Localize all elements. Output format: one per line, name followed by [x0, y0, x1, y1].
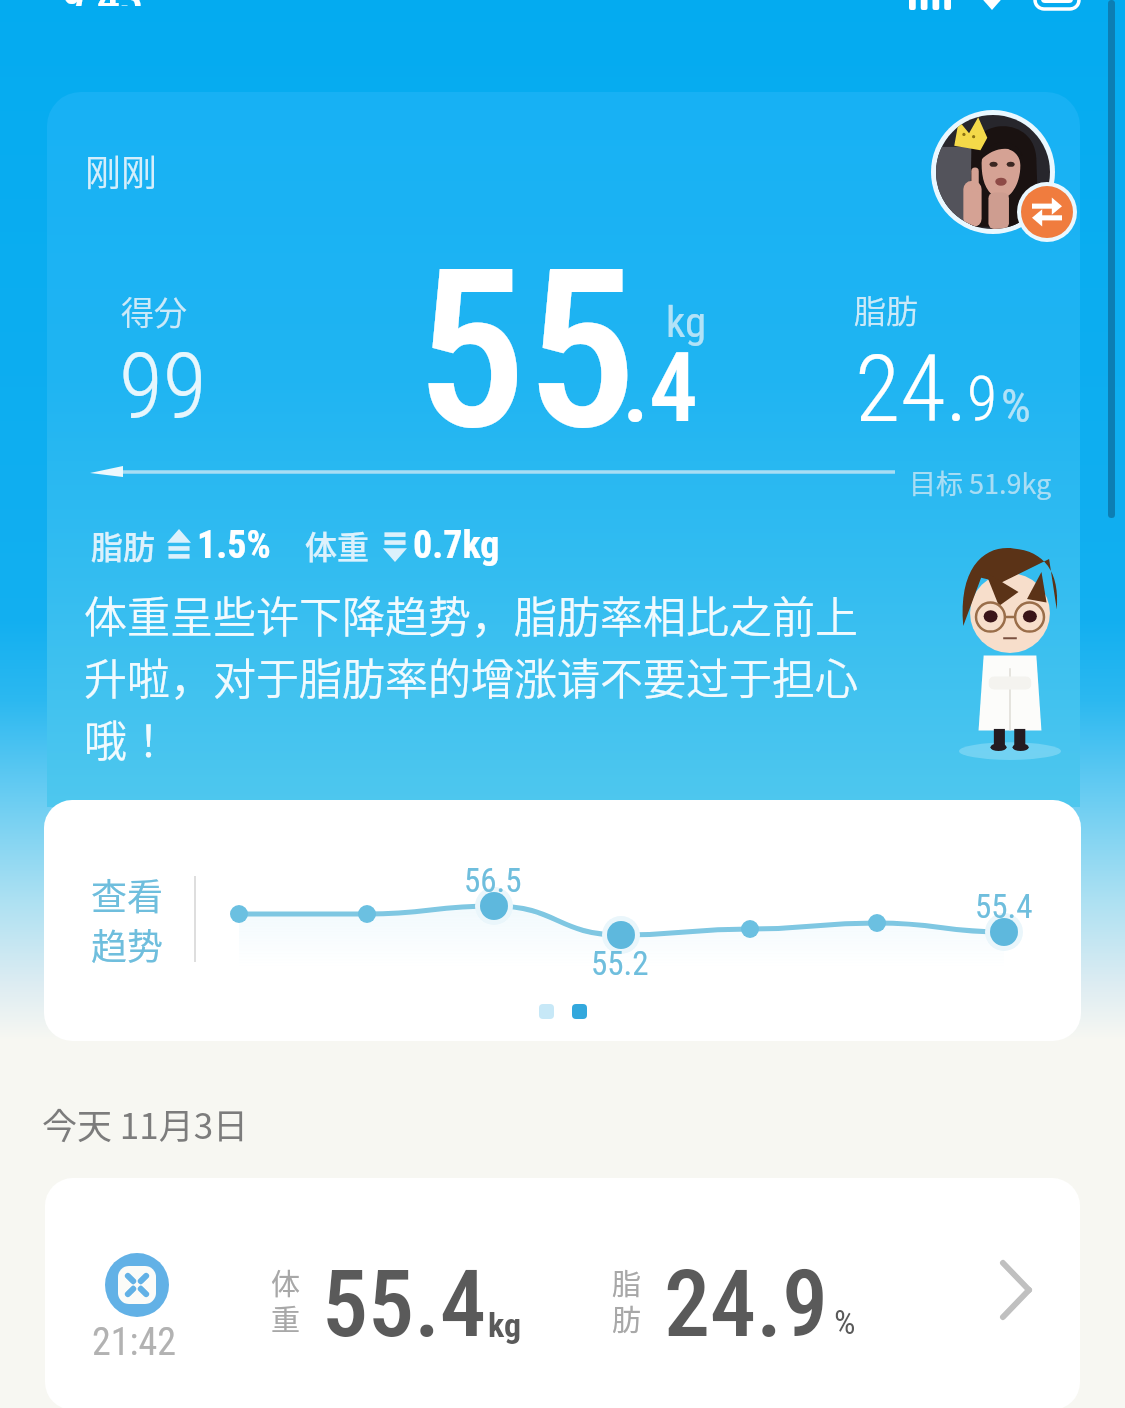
staticText: 体重: [305, 522, 370, 568]
staticText: 体: [271, 1261, 301, 1303]
staticText: 24.: [855, 335, 968, 444]
staticText: 9:43: [62, 0, 144, 6]
staticText: 肪: [612, 1297, 642, 1339]
button[interactable]: 查看: [44, 800, 1081, 1041]
staticText: 55.4: [975, 887, 1033, 926]
staticText: 升啦，对于脂肪率的增涨请不要过于担心: [84, 645, 858, 707]
staticText: %: [834, 1302, 856, 1342]
staticText: 重: [271, 1297, 301, 1339]
staticText: 今天 11月3日: [42, 1098, 249, 1149]
staticText: kg: [666, 297, 707, 347]
staticText: 体重呈些许下降趋势，脂肪率相比之前上: [84, 583, 858, 645]
staticText: .4: [622, 331, 698, 445]
staticText: 55.2: [591, 944, 649, 983]
staticText: 脂肪: [854, 286, 919, 332]
staticText: 哦！: [84, 707, 170, 769]
button[interactable]: 刚刚: [47, 92, 1080, 807]
staticText: 21:42: [92, 1320, 176, 1365]
staticText: 目标 51.9kg: [909, 463, 1052, 502]
staticText: kg: [488, 1305, 522, 1345]
staticText: 99: [119, 335, 207, 440]
staticText: 刚刚: [85, 144, 158, 196]
staticText: 55: [416, 222, 637, 480]
staticText: 56.5: [464, 861, 522, 900]
staticText: 得分: [121, 287, 187, 335]
staticText: 55.4: [322, 1251, 487, 1359]
button[interactable]: Profile: [931, 110, 1080, 252]
staticText: 脂: [612, 1261, 642, 1303]
button[interactable]: 21:42: [45, 1178, 1080, 1408]
staticText: 24.9: [664, 1251, 829, 1359]
staticText: 趋势: [91, 918, 164, 970]
staticText: 查看: [91, 868, 164, 920]
staticText: 脂肪: [91, 522, 156, 568]
staticText: 0.7kg: [413, 523, 500, 568]
other: Details: [1000, 1260, 1032, 1320]
staticText: 1.5%: [197, 523, 271, 568]
staticText: 9: [967, 362, 998, 435]
staticText: %: [1001, 378, 1031, 433]
